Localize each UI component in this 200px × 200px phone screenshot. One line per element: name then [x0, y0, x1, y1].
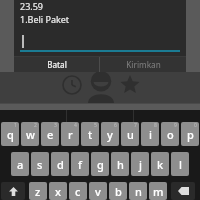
- staticText: 0: [194, 122, 197, 129]
- button[interactable]: v: [89, 182, 107, 200]
- button[interactable]: 8: [141, 122, 159, 146]
- button[interactable]: 0: [181, 122, 199, 146]
- staticText: Kirimkan: [126, 59, 161, 70]
- button[interactable]: k: [151, 152, 169, 176]
- button[interactable]: 9: [161, 122, 179, 146]
- button[interactable]: Kirimkan: [100, 57, 186, 72]
- staticText: r: [68, 127, 73, 142]
- staticText: n: [135, 184, 142, 199]
- staticText: w: [26, 127, 35, 142]
- button[interactable]: c: [69, 182, 87, 200]
- button[interactable]: s: [31, 152, 49, 176]
- button[interactable]: Favorites: [120, 75, 140, 95]
- button[interactable]: 7: [121, 122, 139, 146]
- staticText: g: [97, 157, 104, 172]
- staticText: a: [17, 157, 24, 172]
- staticText: f: [78, 157, 82, 172]
- staticText: z: [35, 184, 41, 199]
- button[interactable]: d: [51, 152, 69, 176]
- button[interactable]: z: [29, 182, 47, 200]
- staticText: j: [139, 157, 142, 172]
- staticText: i: [149, 127, 152, 142]
- staticText: o: [167, 127, 174, 142]
- staticText: 7: [134, 122, 137, 129]
- button[interactable]: Backspace: [171, 182, 195, 200]
- button[interactable]: h: [111, 152, 129, 176]
- staticText: q: [7, 127, 14, 142]
- staticText: 6: [114, 122, 117, 129]
- staticText: d: [57, 157, 64, 172]
- button[interactable]: Contact: [84, 72, 118, 103]
- staticText: b: [115, 184, 122, 199]
- staticText: Batal: [47, 59, 67, 70]
- staticText: v: [95, 184, 101, 199]
- button[interactable]: 4: [61, 122, 79, 146]
- staticText: s: [37, 157, 43, 172]
- staticText: e: [47, 127, 54, 142]
- staticText: 8: [154, 122, 157, 129]
- button[interactable]: 3: [41, 122, 59, 146]
- staticText: x: [55, 184, 61, 199]
- staticText: 1: [14, 122, 17, 129]
- staticText: t: [88, 127, 93, 142]
- staticText: 23.59: [20, 0, 44, 12]
- button[interactable]: Batal: [14, 57, 99, 72]
- button[interactable]: n: [129, 182, 147, 200]
- button[interactable]: m: [149, 182, 167, 200]
- button[interactable]: l: [171, 152, 189, 176]
- button[interactable]: 2: [21, 122, 39, 146]
- staticText: 2: [34, 122, 37, 129]
- staticText: m: [153, 184, 164, 199]
- button[interactable]: a: [11, 152, 29, 176]
- staticText: 1.Beli Paket: [20, 13, 70, 25]
- button[interactable]: Shift: [1, 182, 25, 200]
- button[interactable]: b: [109, 182, 127, 200]
- staticText: h: [117, 157, 124, 172]
- button[interactable]: 1: [1, 122, 19, 146]
- staticText: l: [179, 157, 182, 172]
- button[interactable]: g: [91, 152, 109, 176]
- button[interactable]: x: [49, 182, 67, 200]
- button[interactable]: j: [131, 152, 149, 176]
- staticText: 5: [94, 122, 97, 129]
- button[interactable]: Recent: [62, 75, 82, 95]
- button[interactable]: 6: [101, 122, 119, 146]
- staticText: k: [157, 157, 164, 172]
- staticText: 4: [74, 122, 77, 129]
- staticText: 9: [174, 122, 177, 129]
- button[interactable]: 5: [81, 122, 99, 146]
- staticText: y: [107, 127, 113, 142]
- staticText: p: [187, 127, 194, 142]
- staticText: u: [127, 127, 134, 142]
- staticText: c: [75, 184, 81, 199]
- button[interactable]: f: [71, 152, 89, 176]
- staticText: 3: [54, 122, 57, 129]
